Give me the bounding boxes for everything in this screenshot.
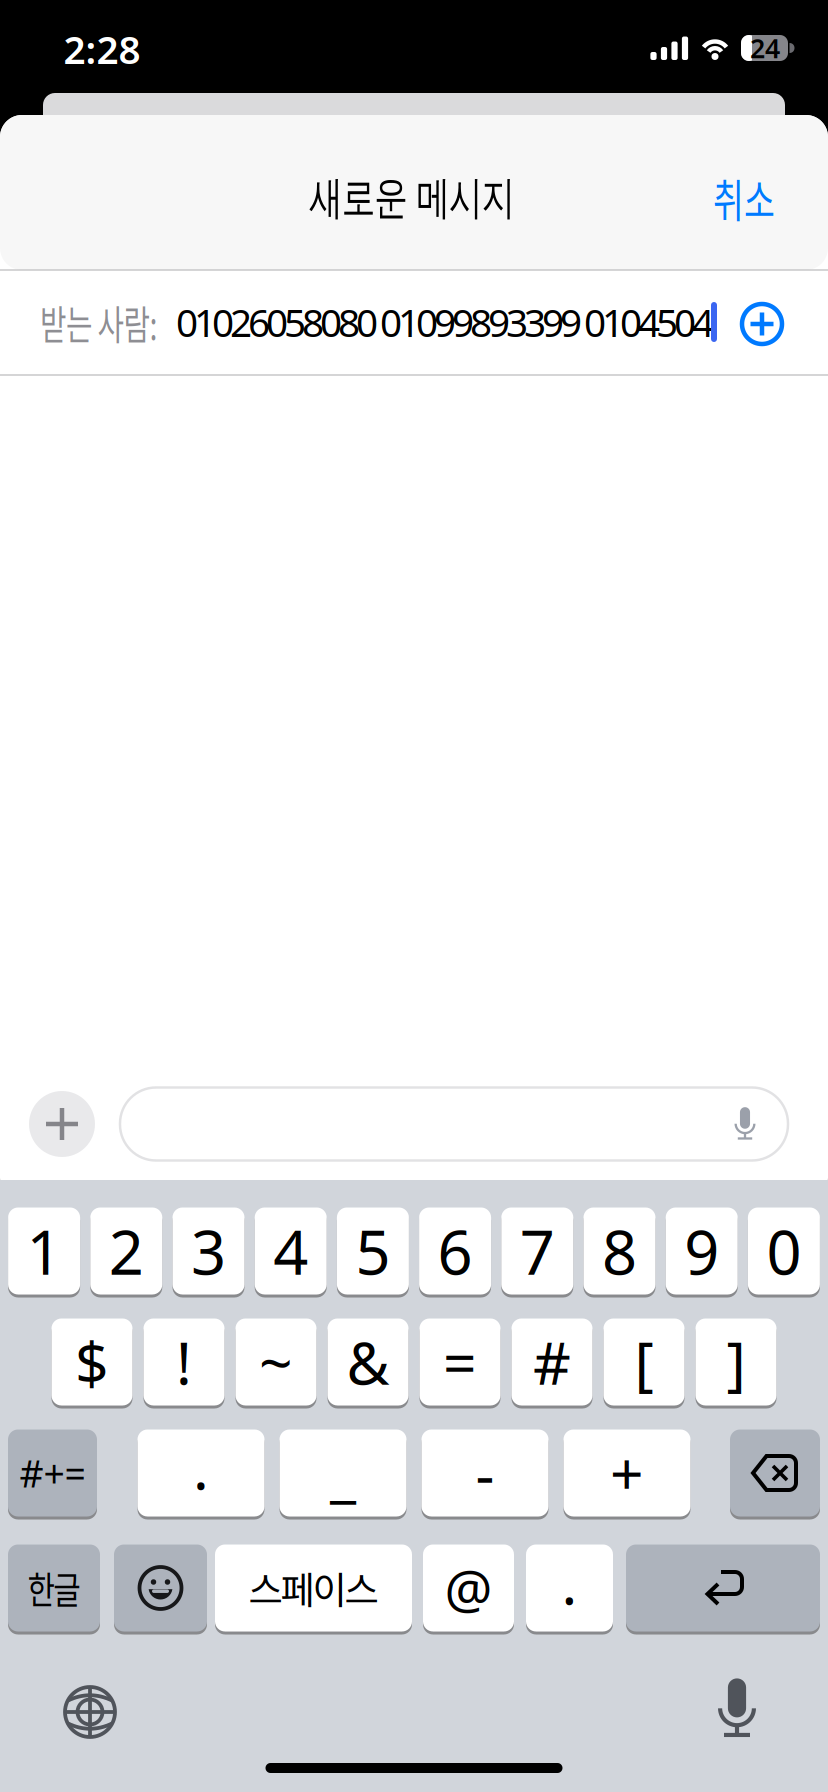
- staticText: [: [634, 1323, 653, 1401]
- button[interactable]: 1: [8, 1206, 80, 1296]
- button[interactable]: 취소: [689, 168, 799, 228]
- button[interactable]: Return: [626, 1543, 820, 1633]
- staticText: 2: [109, 1210, 144, 1292]
- button[interactable]: +: [563, 1428, 690, 1518]
- button[interactable]: #+=: [8, 1428, 97, 1518]
- button[interactable]: Next Keyboard: [58, 1680, 122, 1744]
- button[interactable]: $: [51, 1317, 132, 1407]
- button[interactable]: ~: [235, 1317, 316, 1407]
- button[interactable]: -: [421, 1428, 548, 1518]
- staticText: 5: [355, 1210, 390, 1292]
- button[interactable]: ]: [695, 1317, 776, 1407]
- button[interactable]: .: [137, 1428, 264, 1518]
- button[interactable]: 스페이스: [215, 1543, 412, 1633]
- button[interactable]: Delete: [730, 1428, 820, 1518]
- staticText: .: [561, 1543, 577, 1621]
- staticText: 3: [191, 1210, 226, 1292]
- button[interactable]: _: [279, 1428, 406, 1518]
- button[interactable]: 2: [90, 1206, 162, 1296]
- staticText: 새로운 메시지: [273, 169, 551, 226]
- button[interactable]: Dictate: [731, 1106, 759, 1140]
- staticText: 취소: [702, 165, 786, 231]
- button[interactable]: @: [423, 1543, 514, 1633]
- button[interactable]: =: [419, 1317, 500, 1407]
- staticText: .: [193, 1428, 209, 1506]
- staticText: _: [330, 1434, 356, 1512]
- staticText: 01026058080 01099893399 0104504: [176, 296, 714, 348]
- staticText: 8: [602, 1210, 637, 1292]
- button[interactable]: #: [511, 1317, 592, 1407]
- button[interactable]: .: [526, 1543, 613, 1633]
- staticText: 24: [750, 30, 780, 66]
- staticText: ~: [259, 1323, 293, 1401]
- button[interactable]: 한글: [8, 1543, 100, 1633]
- staticText: 0: [766, 1210, 801, 1292]
- button[interactable]: Add Contact: [738, 300, 786, 348]
- button[interactable]: 6: [419, 1206, 491, 1296]
- staticText: 스페이스: [248, 1561, 378, 1615]
- staticText: $: [75, 1323, 109, 1401]
- staticText: #+=: [19, 1448, 85, 1498]
- button[interactable]: Dictation: [711, 1676, 763, 1738]
- staticText: 6: [438, 1210, 473, 1292]
- staticText: 한글: [21, 1561, 87, 1615]
- staticText: 4: [273, 1210, 308, 1292]
- staticText: =: [443, 1323, 477, 1401]
- staticText: !: [176, 1323, 192, 1401]
- button[interactable]: 4: [255, 1206, 327, 1296]
- button[interactable]: &: [327, 1317, 408, 1407]
- button[interactable]: 9: [666, 1206, 738, 1296]
- staticText: &: [346, 1323, 389, 1401]
- button[interactable]: 5: [337, 1206, 409, 1296]
- button[interactable]: 8: [583, 1206, 655, 1296]
- staticText: 9: [684, 1210, 719, 1292]
- staticText: ]: [726, 1323, 745, 1401]
- button[interactable]: 7: [501, 1206, 573, 1296]
- staticText: +: [610, 1434, 644, 1512]
- staticText: @: [444, 1553, 492, 1623]
- button[interactable]: !: [143, 1317, 224, 1407]
- button[interactable]: Message field: [120, 1087, 788, 1160]
- button[interactable]: [: [603, 1317, 684, 1407]
- staticText: #: [533, 1323, 571, 1401]
- staticText: 2:28: [63, 23, 140, 75]
- button[interactable]: 3: [172, 1206, 244, 1296]
- button[interactable]: Emoji: [114, 1543, 207, 1633]
- staticText: -: [475, 1434, 494, 1512]
- staticText: 받는 사람:: [40, 293, 203, 351]
- button[interactable]: 0: [748, 1206, 820, 1296]
- staticText: 7: [520, 1210, 555, 1292]
- staticText: 1: [27, 1210, 62, 1292]
- button[interactable]: Attach: [29, 1091, 95, 1157]
